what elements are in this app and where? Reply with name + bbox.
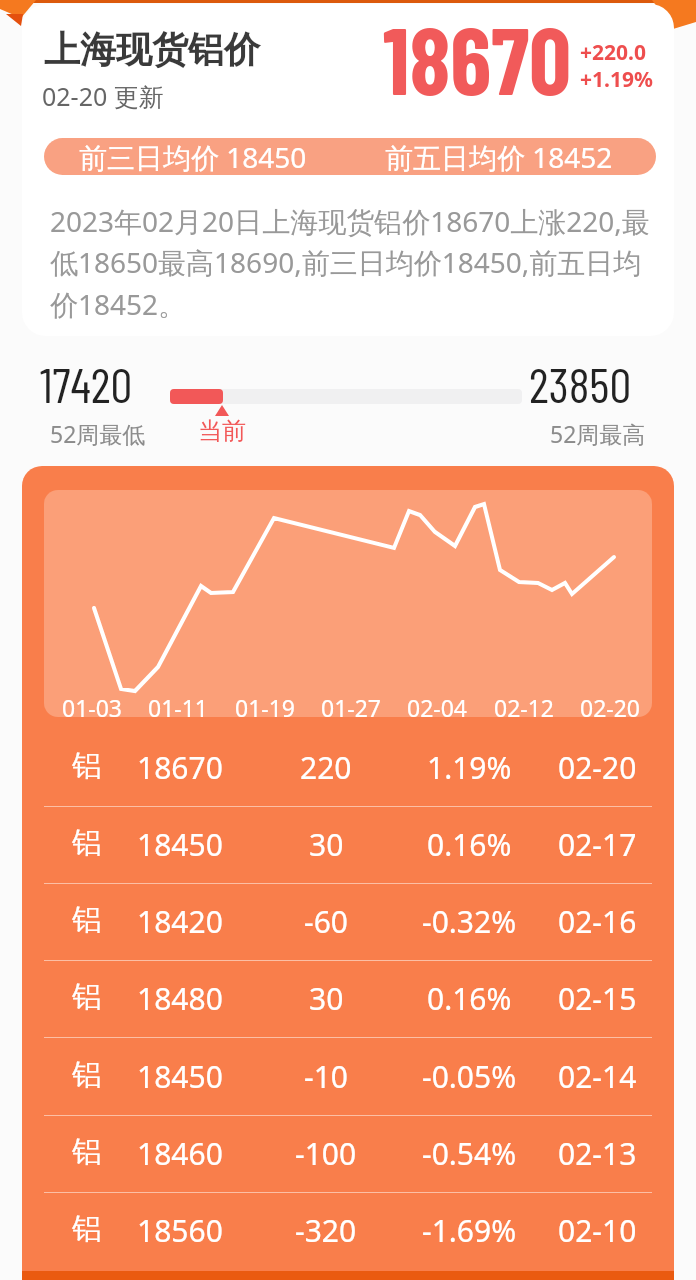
staticText: 18670 xyxy=(137,747,223,781)
staticText: 02-20 xyxy=(580,692,641,717)
button[interactable]: 前三日均价 18450 xyxy=(44,138,656,175)
staticText: 01-03 xyxy=(62,692,123,717)
button[interactable]: 铝 xyxy=(22,803,674,880)
staticText: 02-17 xyxy=(558,824,637,858)
staticText: 前五日均价 18452 xyxy=(385,138,613,175)
staticText: +220.0 xyxy=(580,38,646,64)
staticText: 02-20 更新 xyxy=(42,79,164,105)
staticText: 18480 xyxy=(137,978,223,1012)
staticText: 17420 xyxy=(40,354,133,398)
staticText: 铝 xyxy=(72,824,102,858)
staticText: 52周最低 xyxy=(50,418,146,446)
staticText: 52周最高 xyxy=(550,418,646,446)
staticText: 02-04 xyxy=(407,692,468,717)
staticText: -0.05% xyxy=(422,1056,517,1090)
staticText: 18450 xyxy=(137,824,223,858)
staticText: 30 xyxy=(309,824,344,858)
staticText: -0.32% xyxy=(422,901,517,935)
staticText: 价18452。 xyxy=(50,285,187,315)
staticText: 02-12 xyxy=(494,692,555,717)
staticText: 02-13 xyxy=(558,1133,637,1167)
staticText: 01-27 xyxy=(321,692,382,717)
staticText: 上海现货铝价 xyxy=(44,27,260,71)
staticText: 30 xyxy=(309,978,344,1012)
staticText: -60 xyxy=(304,901,348,935)
staticText: 02-15 xyxy=(558,978,637,1012)
staticText: 01-19 xyxy=(235,692,296,717)
staticText: 18450 xyxy=(137,1056,223,1090)
button[interactable]: 铝 xyxy=(22,1035,674,1112)
staticText: 铝 xyxy=(72,747,102,781)
staticText: 低18650最高18690,前三日均价18450,前五日均 xyxy=(50,243,642,273)
staticText: 2023年02月20日上海现货铝价18670上涨220,最 xyxy=(50,202,650,232)
staticText: -1.69% xyxy=(422,1210,517,1244)
staticText: 1.19% xyxy=(427,747,512,781)
staticText: 18460 xyxy=(137,1133,223,1167)
button[interactable]: 铝 xyxy=(22,880,674,957)
button[interactable]: 01-03 xyxy=(44,490,652,717)
staticText: 02-10 xyxy=(558,1210,637,1244)
staticText: 铝 xyxy=(72,1133,102,1167)
staticText: 02-16 xyxy=(558,901,637,935)
staticText: -0.54% xyxy=(422,1133,517,1167)
staticText: 前三日均价 18450 xyxy=(79,138,307,175)
button[interactable]: 铝 xyxy=(22,957,674,1034)
staticText: 0.16% xyxy=(427,824,512,858)
button[interactable]: 铝 xyxy=(22,1189,674,1266)
staticText: 23850 xyxy=(529,354,632,398)
staticText: 铝 xyxy=(72,1210,102,1244)
staticText: 0.16% xyxy=(427,978,512,1012)
staticText: 02-20 xyxy=(558,747,637,781)
staticText: 铝 xyxy=(72,978,102,1012)
staticText: 18670 xyxy=(383,4,572,96)
staticText: 18420 xyxy=(137,901,223,935)
button[interactable]: 铝 xyxy=(22,726,674,803)
staticText: -320 xyxy=(295,1210,357,1244)
button[interactable]: 铝 xyxy=(22,1112,674,1189)
staticText: +1.19% xyxy=(580,65,653,91)
staticText: 18560 xyxy=(137,1210,223,1244)
staticText: 铝 xyxy=(72,1056,102,1090)
staticText: -100 xyxy=(295,1133,357,1167)
staticText: 01-11 xyxy=(148,692,209,717)
staticText: -10 xyxy=(304,1056,348,1090)
staticText: 当前 xyxy=(198,416,246,444)
staticText: 220 xyxy=(300,747,352,781)
staticText: 02-14 xyxy=(558,1056,637,1090)
staticText: 铝 xyxy=(72,901,102,935)
